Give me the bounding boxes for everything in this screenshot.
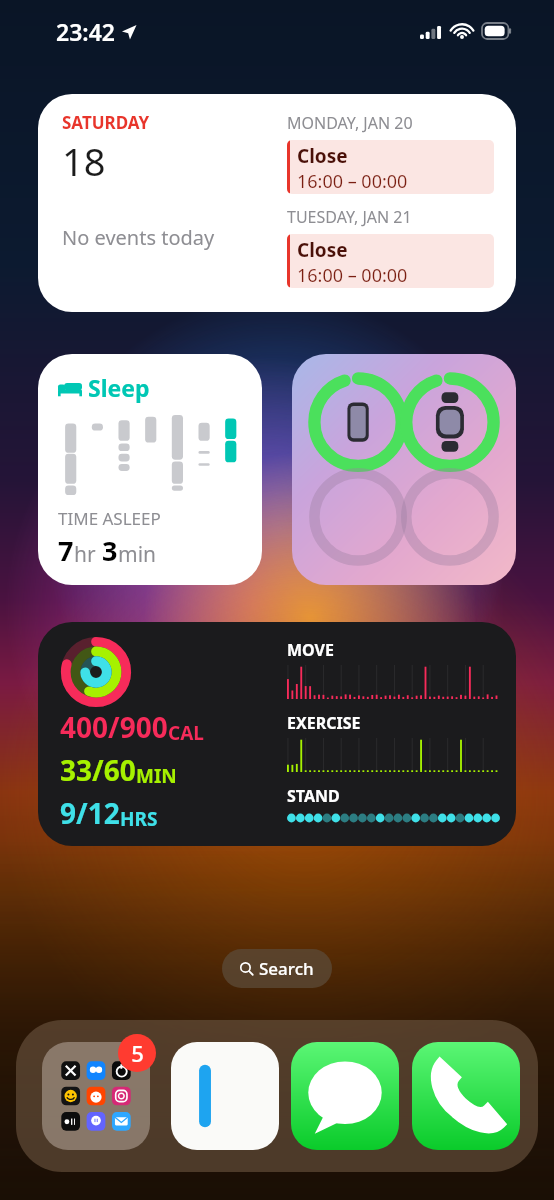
staticText: 33/60 bbox=[60, 751, 136, 789]
staticText: 9/12 bbox=[60, 794, 120, 832]
staticText: 16:00 – 00:00 bbox=[297, 169, 408, 194]
staticText: 400/900 bbox=[60, 708, 168, 746]
button[interactable]: Social folder bbox=[42, 1042, 150, 1150]
staticText: Search bbox=[259, 957, 314, 980]
staticText: min bbox=[118, 540, 157, 569]
staticText: Sleep bbox=[88, 372, 150, 403]
staticText: MONDAY, JAN 20 bbox=[287, 112, 413, 134]
staticText: HRS bbox=[120, 806, 158, 832]
staticText: MIN bbox=[136, 763, 177, 789]
staticText: No events today bbox=[62, 224, 215, 251]
staticText: TUESDAY, JAN 21 bbox=[287, 206, 412, 228]
staticText: SATURDAY bbox=[62, 111, 150, 134]
staticText: MOVE bbox=[287, 639, 334, 661]
staticText: hr bbox=[74, 540, 102, 569]
staticText: STAND bbox=[287, 785, 340, 807]
staticText: Close bbox=[297, 237, 348, 263]
staticText: 7 bbox=[58, 532, 74, 569]
button[interactable]: Close bbox=[287, 140, 494, 194]
button[interactable]: Bear Notes bbox=[171, 1042, 279, 1150]
staticText: 18 bbox=[62, 135, 106, 187]
button[interactable]: Battery levels bbox=[292, 354, 516, 585]
staticText: 5 bbox=[131, 1038, 144, 1068]
button[interactable]: Search bbox=[222, 949, 332, 988]
button[interactable]: Phone bbox=[412, 1042, 520, 1150]
staticText: 16:00 – 00:00 bbox=[297, 263, 408, 288]
button[interactable]: Close bbox=[287, 234, 494, 288]
staticText: 23:42 bbox=[56, 16, 115, 47]
button[interactable]: SATURDAY bbox=[38, 94, 516, 312]
staticText: Close bbox=[297, 143, 348, 169]
button[interactable]: Messages bbox=[291, 1042, 399, 1150]
staticText: CAL bbox=[168, 720, 204, 746]
button[interactable]: 400/900 bbox=[38, 622, 516, 846]
staticText: EXERCISE bbox=[287, 712, 361, 734]
button[interactable]: Sleep bbox=[38, 354, 262, 585]
staticText: TIME ASLEEP bbox=[58, 507, 161, 530]
staticText: 3 bbox=[102, 532, 118, 569]
